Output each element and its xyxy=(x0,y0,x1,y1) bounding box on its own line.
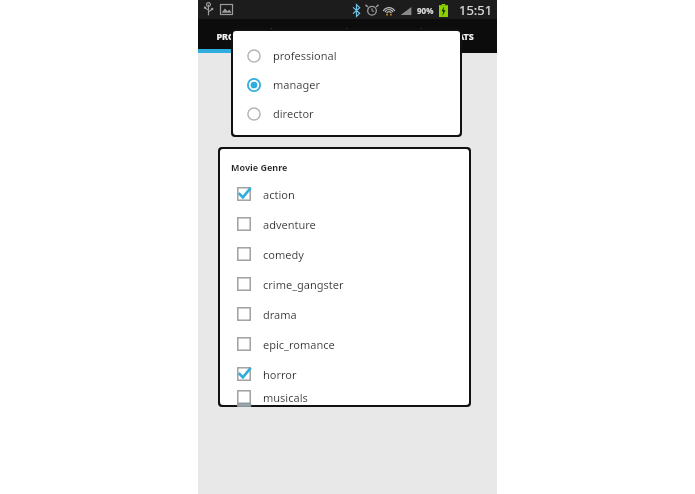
button[interactable]: drama xyxy=(220,299,469,329)
button[interactable]: crime_gangster xyxy=(220,269,469,299)
staticText: CHATS xyxy=(445,30,474,42)
staticText: PROFILE xyxy=(216,30,254,42)
staticText: adventure xyxy=(263,217,316,232)
staticText: horror xyxy=(263,367,297,382)
button[interactable]: manager xyxy=(233,70,460,99)
staticText: musicals xyxy=(263,390,308,405)
staticText: crime_gangster xyxy=(263,277,344,292)
button[interactable]: BROWSE xyxy=(272,19,347,53)
button[interactable]: musicals xyxy=(220,389,469,405)
staticText: BROWSE xyxy=(291,30,329,42)
staticText: manager xyxy=(273,77,320,92)
button[interactable]: action xyxy=(220,179,469,209)
button[interactable]: adventure xyxy=(220,209,469,239)
staticText: drama xyxy=(263,307,297,322)
button[interactable]: epic_romance xyxy=(220,329,469,359)
button[interactable]: comedy xyxy=(220,239,469,269)
staticText: Movie Genre xyxy=(231,161,288,173)
button[interactable]: PROFILE xyxy=(198,19,272,53)
staticText: professional xyxy=(273,48,337,63)
staticText: comedy xyxy=(263,247,304,262)
staticText: director xyxy=(273,106,314,121)
staticText: 15:51 xyxy=(459,1,493,19)
button[interactable]: FAVOURITES xyxy=(347,19,422,53)
staticText: epic_romance xyxy=(263,337,335,352)
button[interactable]: director xyxy=(233,99,460,128)
staticText: 90% xyxy=(417,5,434,16)
button[interactable]: CHATS xyxy=(422,19,497,53)
button[interactable]: horror xyxy=(220,359,469,389)
staticText: FAVOURITES xyxy=(357,30,412,42)
button[interactable]: professional xyxy=(233,41,460,70)
staticText: action xyxy=(263,187,295,202)
